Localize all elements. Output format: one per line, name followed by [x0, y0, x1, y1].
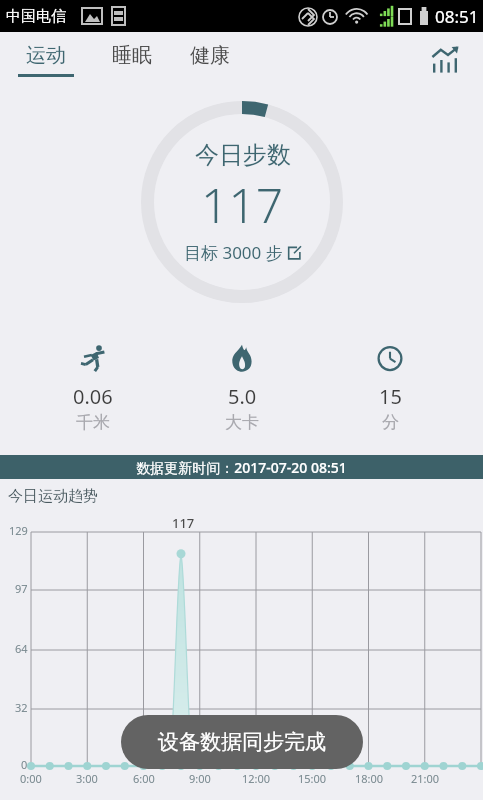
staticText: 睡眠 — [112, 43, 152, 68]
staticText: 千米 — [76, 412, 110, 433]
staticText: 18:00 — [355, 771, 384, 786]
staticText: 设备数据同步完成 — [158, 729, 326, 755]
staticText: 中国电信 — [6, 7, 66, 26]
staticText: 15:00 — [298, 771, 327, 786]
staticText: 32 — [15, 700, 28, 715]
button[interactable]: 今日步数 — [137, 97, 347, 307]
button[interactable]: 统计图表 — [425, 40, 465, 80]
staticText: 0:00 — [20, 771, 42, 786]
button[interactable]: 15 — [335, 339, 445, 437]
button[interactable]: 5.0 — [187, 339, 297, 437]
staticText: 大卡 — [225, 412, 259, 433]
staticText: 21:00 — [411, 771, 440, 786]
staticText: 数据更新时间：2017-07-20 08:51 — [136, 458, 347, 477]
staticText: 129 — [9, 523, 28, 538]
staticText: 64 — [15, 641, 28, 656]
button[interactable]: 设备数据同步完成 — [121, 715, 363, 769]
staticText: 健康 — [190, 43, 230, 68]
staticText: 分 — [382, 412, 399, 433]
staticText: 117 — [172, 514, 195, 532]
staticText: 97 — [15, 581, 28, 596]
button[interactable]: 健康 — [186, 43, 234, 77]
staticText: 5.0 — [228, 383, 257, 410]
staticText: 今日运动趋势 — [8, 487, 98, 506]
staticText: 08:51 — [435, 5, 479, 28]
staticText: 0 — [21, 757, 28, 772]
button[interactable]: 睡眠 — [108, 43, 156, 77]
staticText: 6:00 — [133, 771, 155, 786]
staticText: 117 — [201, 172, 284, 237]
staticText: 12:00 — [242, 771, 271, 786]
staticText: 15 — [379, 383, 402, 410]
staticText: 9:00 — [189, 771, 211, 786]
button[interactable]: 0.06 — [38, 339, 148, 437]
staticText: 今日步数 — [195, 140, 291, 170]
staticText: 0.06 — [73, 383, 113, 410]
button[interactable]: 运动 — [14, 43, 78, 77]
button[interactable] — [0, 513, 483, 800]
staticText: 运动 — [26, 43, 66, 68]
staticText: 目标 3000 步 — [184, 241, 283, 264]
staticText: 3:00 — [76, 771, 98, 786]
